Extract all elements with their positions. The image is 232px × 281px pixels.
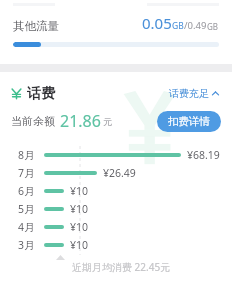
button[interactable]: 8月	[18, 146, 224, 164]
button[interactable]: 5月	[18, 200, 224, 218]
staticText: 当前余额	[11, 114, 55, 128]
staticText: 扣费详情	[168, 115, 210, 128]
staticText: 4月	[18, 220, 35, 234]
button[interactable]: 6月	[18, 182, 224, 200]
staticText: 话费充足	[169, 87, 209, 100]
staticText: GB	[207, 21, 219, 32]
button[interactable]: 话费充足	[167, 83, 221, 104]
staticText: /0.49	[184, 19, 207, 32]
staticText: 0.05	[142, 13, 172, 33]
staticText: 6月	[18, 184, 35, 198]
staticText: 7月	[18, 166, 35, 180]
staticText: 其他流量	[13, 19, 59, 33]
staticText: ¥10	[70, 202, 89, 216]
other: Collapse	[212, 90, 219, 97]
staticText: 近期月均消费 22.45元	[72, 260, 171, 274]
staticText: GB	[172, 20, 184, 32]
staticText: ¥10	[70, 238, 89, 252]
staticText: 3月	[18, 238, 35, 252]
staticText: 5月	[18, 202, 35, 216]
button[interactable]: 3月	[18, 236, 224, 254]
staticText: ¥68.19	[187, 148, 220, 162]
staticText: ¥10	[70, 184, 89, 198]
staticText: 话费	[27, 85, 55, 103]
staticText: 元	[103, 116, 112, 127]
button[interactable]: 4月	[18, 218, 224, 236]
staticText: ¥26.49	[103, 166, 136, 180]
staticText: 21.86	[60, 110, 101, 132]
button[interactable]: 7月	[18, 164, 224, 182]
button[interactable]: 扣费详情	[157, 111, 221, 132]
staticText: 8月	[18, 148, 35, 162]
staticText: ¥10	[70, 220, 89, 234]
